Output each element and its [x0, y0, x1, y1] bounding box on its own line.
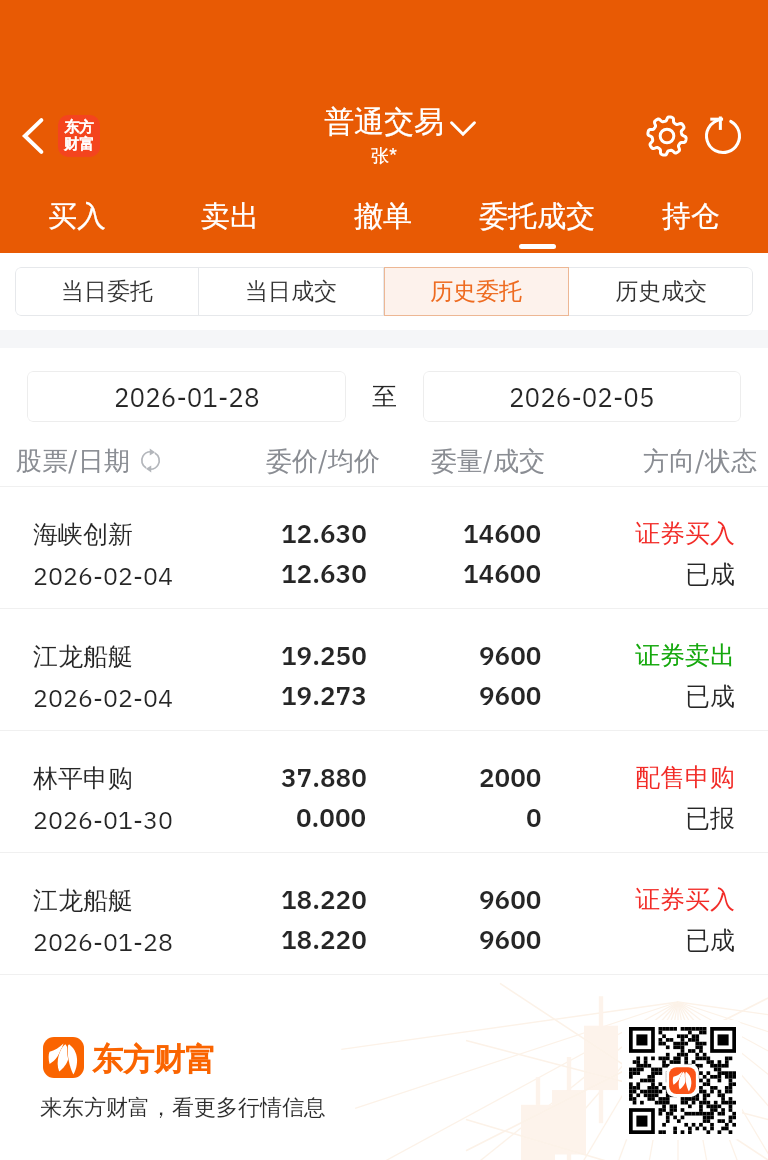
button[interactable]: Back [14, 104, 108, 168]
staticText: 2026-02-04 [33, 559, 173, 592]
staticText: 江龙船艇 [33, 641, 133, 672]
staticText: 14600 [463, 516, 542, 550]
staticText: 18.220 [281, 922, 367, 956]
staticText: 9600 [479, 638, 542, 672]
staticText: 林平申购 [33, 763, 133, 794]
staticText: 历史成交 [615, 277, 707, 306]
button[interactable]: 卖出 [153, 185, 306, 253]
button[interactable]: 2026-02-05 [423, 371, 741, 422]
staticText: 证券卖出 [635, 640, 735, 671]
button[interactable]: 江龙船艇 [0, 853, 768, 975]
button[interactable]: 历史成交 [569, 267, 753, 316]
staticText: 买入 [48, 198, 106, 235]
button[interactable]: 当日委托 [15, 267, 198, 316]
staticText: 2026-01-30 [33, 803, 173, 836]
button[interactable]: Settings [639, 108, 695, 164]
staticText: 撤单 [354, 198, 412, 235]
staticText: 已成 [685, 925, 735, 956]
staticText: 0.000 [296, 800, 367, 834]
staticText: 至 [372, 381, 397, 412]
staticText: 海峡创新 [33, 519, 133, 550]
staticText: 股票/日期 [16, 443, 130, 477]
staticText: 东方 [64, 118, 94, 137]
staticText: 委量/成交 [431, 443, 545, 477]
button[interactable]: 江龙船艇 [0, 609, 768, 731]
staticText: 来东方财富，看更多行情信息 [40, 1094, 326, 1122]
staticText: 19.273 [281, 678, 367, 712]
button[interactable]: 委托成交 [460, 185, 614, 253]
button[interactable]: 买入 [0, 185, 153, 253]
staticText: 12.630 [281, 556, 367, 590]
button[interactable]: 海峡创新 [0, 487, 768, 609]
staticText: 2000 [479, 760, 542, 794]
button[interactable]: 撤单 [306, 185, 460, 253]
staticText: 东方财富 [92, 1040, 216, 1079]
staticText: 方向/状态 [643, 443, 757, 477]
staticText: 证券买入 [635, 884, 735, 915]
staticText: 持仓 [662, 198, 720, 235]
staticText: 12.630 [281, 516, 367, 550]
staticText: 已成 [685, 559, 735, 590]
staticText: 已成 [685, 681, 735, 712]
staticText: 0 [526, 800, 542, 834]
staticText: 张* [371, 144, 398, 168]
staticText: 9600 [479, 678, 542, 712]
staticText: 配售申购 [635, 762, 735, 793]
button[interactable]: Refresh [695, 108, 751, 164]
staticText: 当日成交 [245, 277, 337, 306]
staticText: 9600 [479, 882, 542, 916]
button[interactable]: 2026-01-28 [27, 371, 346, 422]
staticText: 19.250 [281, 638, 367, 672]
staticText: 历史委托 [430, 277, 522, 306]
staticText: 9600 [479, 922, 542, 956]
staticText: 14600 [463, 556, 542, 590]
staticText: 2026-02-05 [509, 380, 655, 414]
staticText: 委价/均价 [266, 443, 380, 477]
staticText: 2026-02-04 [33, 681, 173, 714]
staticText: 2026-01-28 [114, 380, 260, 414]
staticText: 江龙船艇 [33, 885, 133, 916]
button[interactable]: 林平申购 [0, 731, 768, 853]
staticText: 普通交易 [324, 103, 444, 141]
staticText: 2026-01-28 [33, 925, 173, 958]
staticText: 37.880 [281, 760, 367, 794]
button[interactable]: 历史委托 [384, 267, 568, 316]
staticText: 财富 [64, 135, 94, 154]
button[interactable]: 当日成交 [199, 267, 383, 316]
staticText: 已报 [685, 803, 735, 834]
button[interactable]: 股票/日期 [16, 443, 162, 477]
staticText: 卖出 [201, 198, 259, 235]
staticText: 委托成交 [479, 198, 595, 235]
staticText: 当日委托 [61, 277, 153, 306]
button[interactable]: 持仓 [614, 185, 768, 253]
staticText: 证券买入 [635, 518, 735, 549]
staticText: 18.220 [281, 882, 367, 916]
